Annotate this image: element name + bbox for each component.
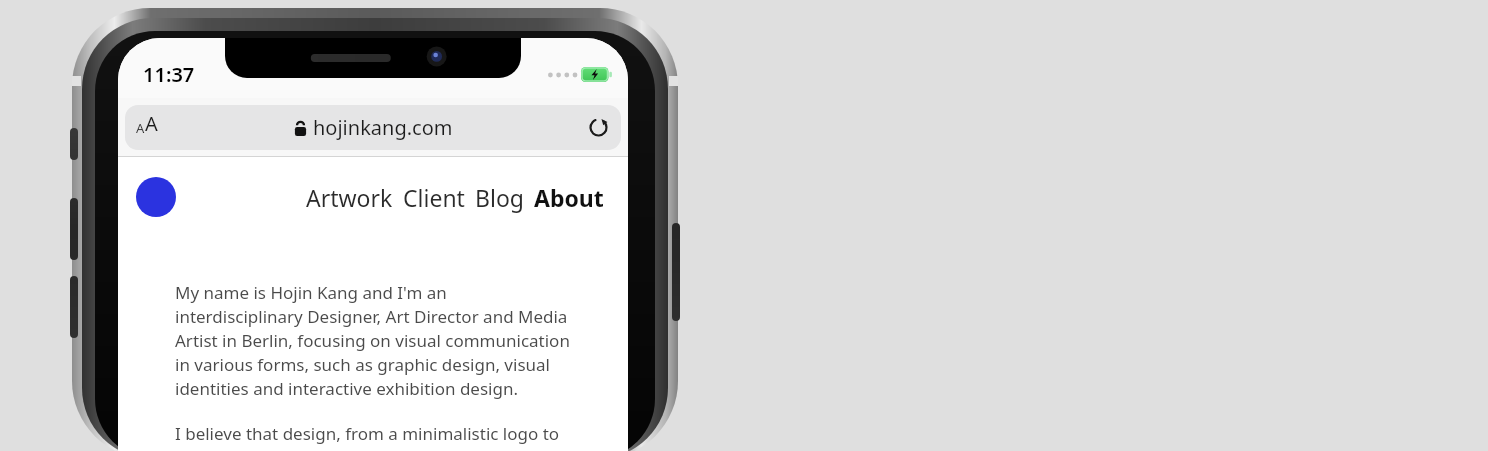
button[interactable]: Artwork [306,182,393,213]
staticText: A [145,110,158,137]
button[interactable]: Text size options [136,105,158,150]
button[interactable]: Client [403,182,465,213]
staticText: 11:37 [143,61,195,88]
staticText: A [136,119,145,137]
button[interactable]: Reload page [587,105,610,150]
staticText: Blog [475,182,524,213]
staticText: Client [403,182,465,213]
button[interactable]: Blog [475,182,524,213]
button[interactable]: About [534,182,604,213]
button[interactable]: Home [136,177,176,217]
staticText: My name is Hojin Kang and I'm an interdi… [175,281,573,400]
staticText: Artwork [306,182,393,213]
button[interactable]: Text size options [125,105,621,150]
staticText: About [534,182,604,213]
staticText: I believe that design, from a minimalist… [175,422,573,451]
staticText: hojinkang.com [313,114,453,141]
